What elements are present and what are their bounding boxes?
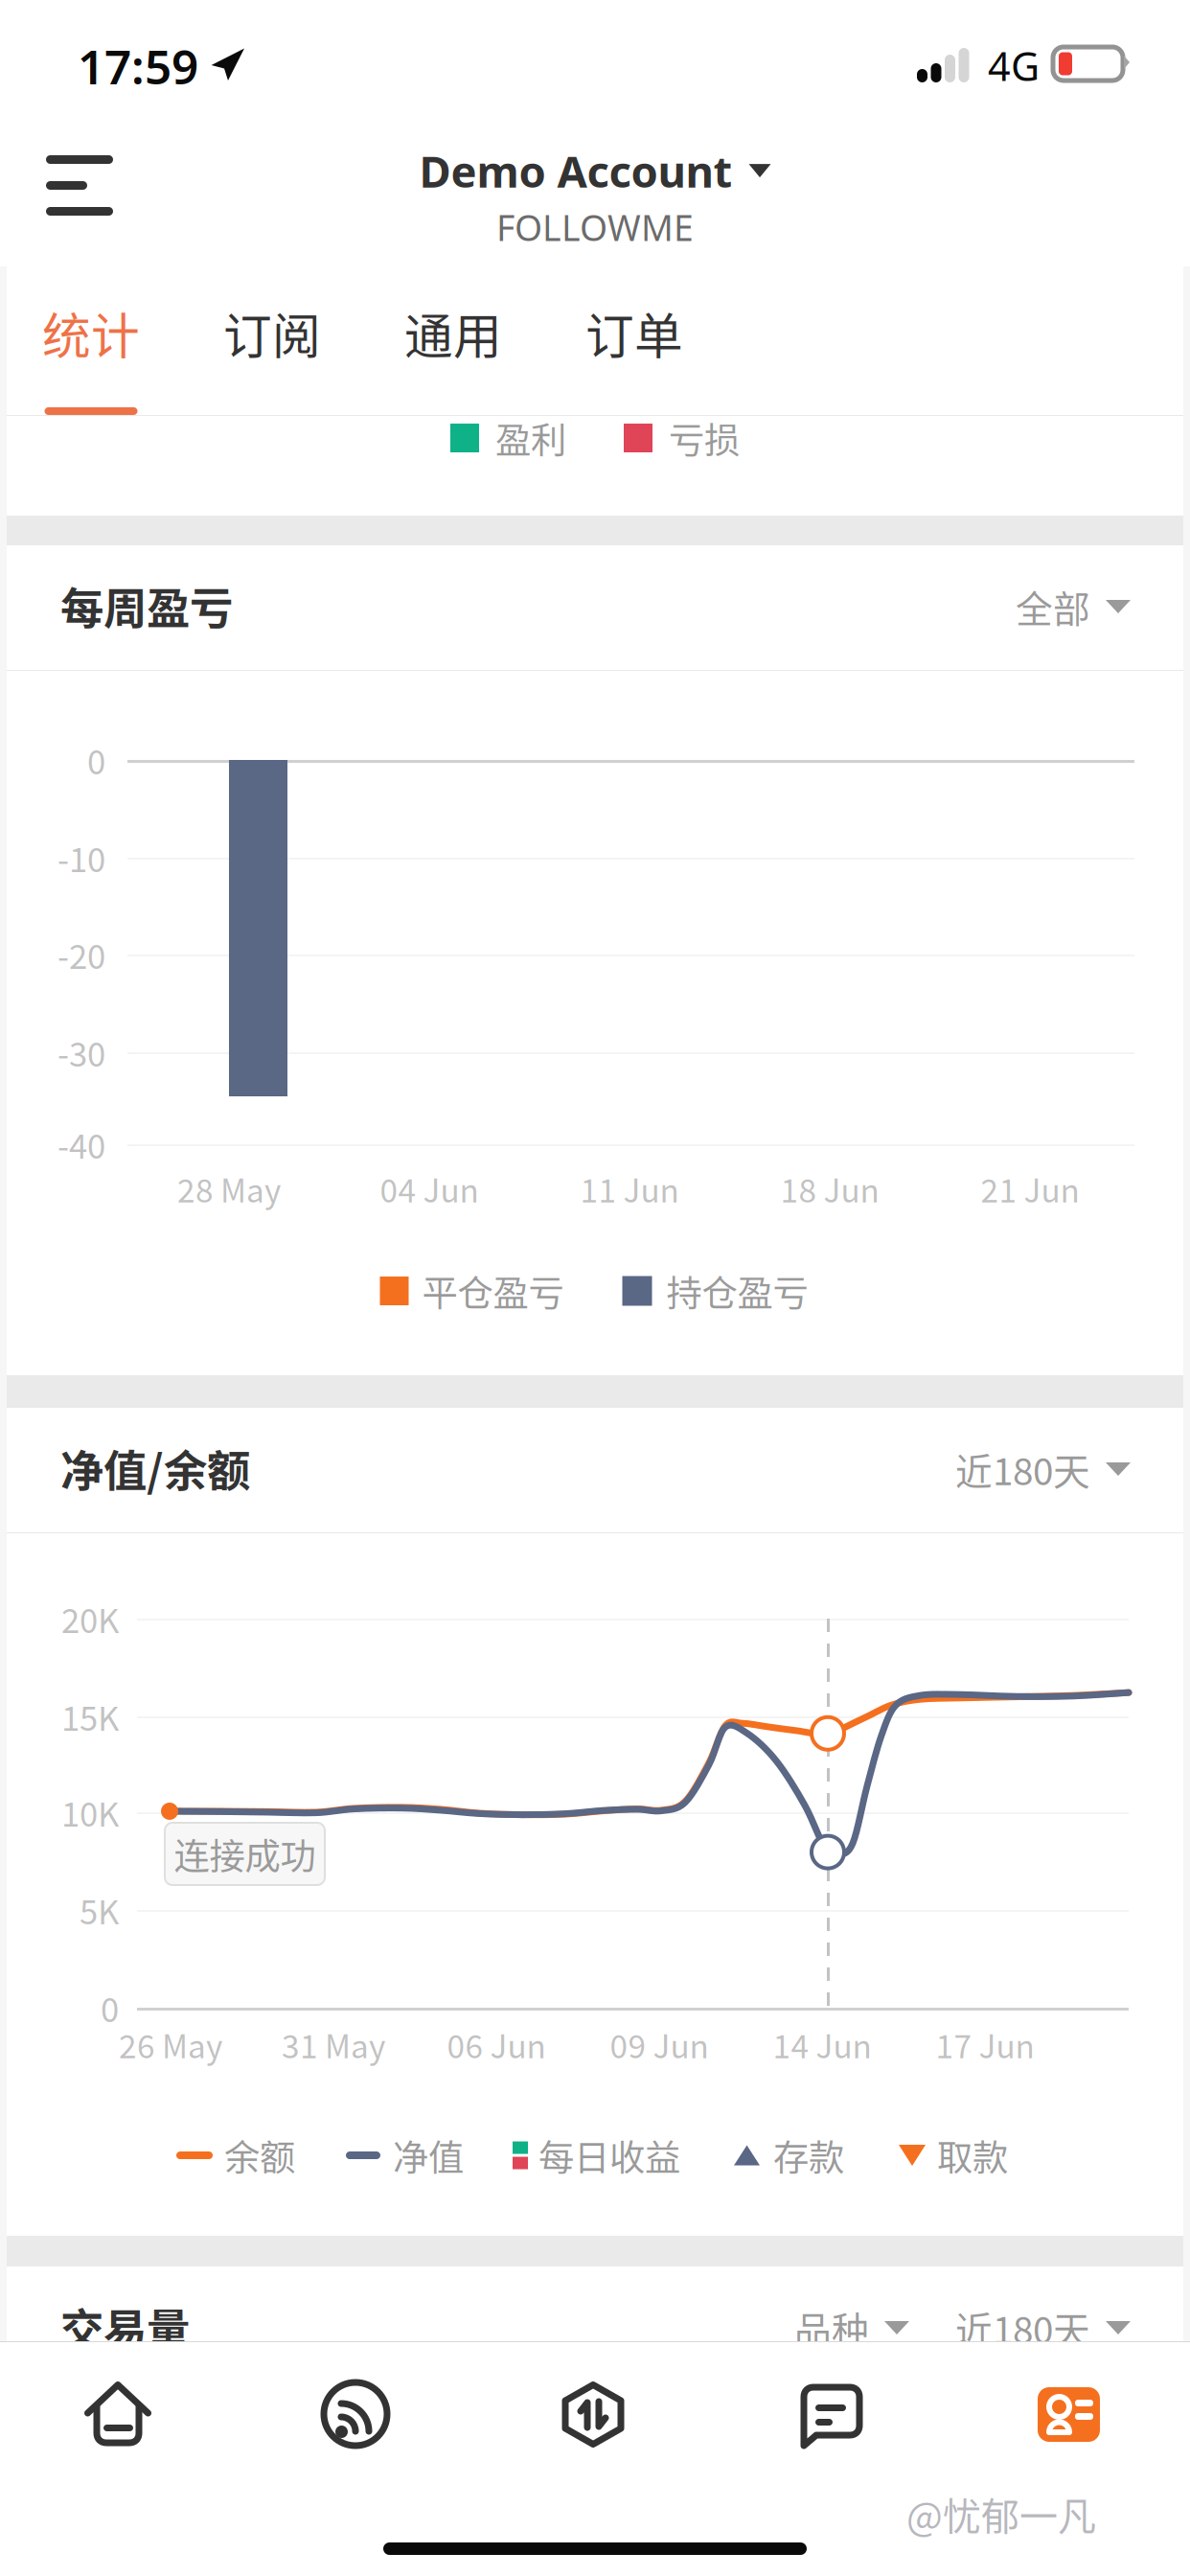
button[interactable]: 统计 (0, 259, 182, 416)
staticText: 4G (988, 39, 1040, 92)
staticText: 28 May (177, 1165, 281, 1212)
staticText: 亏损 (669, 412, 740, 464)
staticText: 交易量 (60, 2295, 190, 2358)
staticText: 0 (87, 736, 105, 784)
button[interactable]: 全部 (1016, 545, 1131, 668)
staticText: 净值 (393, 2129, 464, 2181)
staticText: -40 (57, 1120, 105, 1168)
staticText: -10 (57, 834, 105, 882)
staticText: 统计 (42, 298, 140, 368)
button[interactable]: Trade (475, 2357, 713, 2472)
staticText: FOLLOWME (496, 203, 694, 251)
staticText: 15K (61, 1692, 119, 1740)
button[interactable]: 通用 (362, 259, 544, 416)
staticText: 0 (101, 1984, 119, 2032)
button[interactable]: Demo Account (393, 142, 797, 251)
staticText: 17 Jun (936, 2021, 1034, 2067)
button[interactable]: 近180天 (955, 1408, 1131, 1530)
button[interactable]: Messages (713, 2357, 950, 2472)
staticText: 余额 (224, 2129, 295, 2181)
button[interactable]: 订单 (543, 259, 725, 416)
staticText: 04 Jun (380, 1165, 479, 1212)
staticText: 14 Jun (773, 2021, 871, 2067)
button[interactable]: Home (0, 2357, 238, 2472)
button[interactable]: 订阅 (181, 259, 363, 416)
staticText: 26 May (119, 2021, 222, 2067)
button[interactable]: Menu (29, 136, 130, 235)
staticText: 订单 (585, 298, 683, 368)
button[interactable]: 近180天 (909, 2266, 1131, 2389)
staticText: 17:59 (78, 34, 198, 97)
staticText: 全部 (1016, 580, 1090, 633)
staticText: 连接成功 (174, 1828, 316, 1880)
button[interactable]: Profile (950, 2357, 1188, 2472)
staticText: 10K (61, 1788, 119, 1836)
staticText: 近180天 (955, 2301, 1090, 2355)
staticText: 品种 (794, 2301, 869, 2355)
staticText: 平仓盈亏 (422, 1265, 564, 1317)
button[interactable]: Signals (238, 2357, 475, 2472)
staticText: 每周盈亏 (60, 574, 233, 637)
staticText: 18 Jun (780, 1165, 879, 1212)
staticText: -30 (57, 1028, 105, 1076)
staticText: 订阅 (223, 298, 321, 368)
staticText: 每日收益 (538, 2129, 680, 2181)
staticText: 存款 (773, 2129, 844, 2181)
staticText: 取款 (937, 2129, 1008, 2181)
staticText: Demo Account (419, 142, 732, 200)
staticText: 通用 (404, 298, 502, 368)
staticText: 21 Jun (981, 1165, 1079, 1212)
staticText: 06 Jun (447, 2021, 546, 2067)
staticText: 31 May (282, 2021, 385, 2067)
staticText: 5K (80, 1886, 119, 1934)
staticText: 11 Jun (580, 1165, 679, 1212)
staticText: 盈利 (495, 412, 566, 464)
staticText: 持仓盈亏 (666, 1265, 808, 1317)
staticText: -20 (57, 930, 105, 979)
button[interactable]: 品种 (794, 2266, 909, 2389)
staticText: 09 Jun (610, 2021, 709, 2067)
staticText: 净值/余额 (60, 1437, 250, 1500)
staticText: 20K (61, 1595, 119, 1643)
staticText: 近180天 (955, 1442, 1090, 1496)
staticText: @忧郁一凡 (906, 2486, 1096, 2541)
